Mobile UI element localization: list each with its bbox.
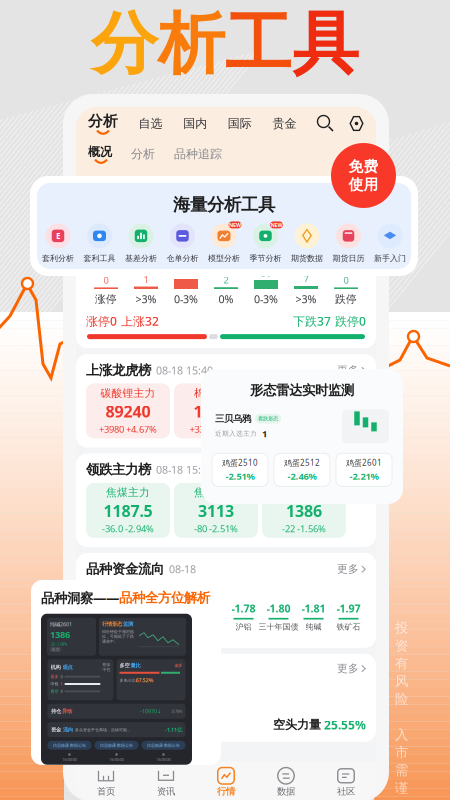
staticText: 焦煤主力 <box>106 486 150 499</box>
staticText: 品种追踪 <box>174 147 222 161</box>
staticText: 多单占比 <box>119 678 135 683</box>
staticText: 海量分析工具 <box>173 194 275 215</box>
staticText: 偏多 <box>174 663 182 668</box>
staticText: 仓单分析 <box>166 253 198 263</box>
staticText: 国内 <box>183 116 207 131</box>
button[interactable]: 首页 <box>76 762 136 800</box>
staticText: 使用 <box>348 175 378 193</box>
staticText: 近期入选主力 <box>215 429 257 438</box>
staticText: 空头力量 <box>273 717 321 732</box>
button[interactable]: 概况 <box>88 141 112 166</box>
staticText: 3113 <box>198 500 234 521</box>
staticText: 资讯 <box>157 786 175 797</box>
staticText: -1.80 <box>266 601 290 615</box>
button[interactable]: 贵金 <box>272 107 296 139</box>
staticText: 16:00:00 <box>156 757 170 762</box>
button[interactable]: 品种追踪 <box>174 141 222 166</box>
staticText: 纯碱 <box>305 622 321 632</box>
staticText: NEW <box>270 221 282 228</box>
staticText: 主力 <box>51 647 59 652</box>
staticText: 监测 <box>123 621 133 627</box>
staticText: 工 <box>225 3 292 85</box>
button[interactable]: 碳酸锂主力 <box>86 383 170 438</box>
button[interactable]: 设置 <box>348 115 365 132</box>
button[interactable]: E <box>37 221 79 265</box>
button[interactable]: 焦炭主力 <box>174 483 258 538</box>
staticText: >3% <box>135 292 156 306</box>
staticText: 贵金 <box>272 116 296 131</box>
staticText: 品种全方位解析 <box>119 590 210 606</box>
staticText: 机构 <box>50 664 60 670</box>
button[interactable]: 国内 <box>183 107 207 139</box>
staticText: 0-3% <box>254 292 278 306</box>
staticText: 资金 <box>51 726 61 733</box>
staticText: 整体 中性 <box>102 662 110 672</box>
staticText: 08-18 15:40 <box>156 363 213 377</box>
staticText: 0 <box>60 689 62 694</box>
staticText: 60分钟处于相对低位，可能处于下跌通道中。 <box>102 629 134 644</box>
staticText: 0 <box>343 274 348 286</box>
staticText: 品种资金流向 <box>86 561 164 577</box>
staticText: -2.51% <box>225 470 254 482</box>
staticText: 1 <box>262 427 267 440</box>
button[interactable]: 套利工具 <box>79 221 120 265</box>
button[interactable]: 数据 <box>256 762 316 800</box>
staticText: 信息披露·数据公告 <box>100 742 133 748</box>
staticText: 套利分析 <box>42 253 74 263</box>
button[interactable]: 新手入门 <box>369 221 411 265</box>
staticText: 行情 <box>217 786 235 797</box>
staticText: 有 <box>395 655 408 672</box>
staticText: 更多 <box>337 662 359 675</box>
button[interactable]: 更多 <box>337 562 366 576</box>
staticText: 多空 <box>119 662 129 669</box>
staticText: 1386 <box>286 500 322 521</box>
staticText: 资 <box>395 637 408 654</box>
button[interactable]: 基差分析 <box>120 221 162 265</box>
button[interactable]: 期货日历 <box>328 221 369 265</box>
button[interactable]: 分析 <box>131 141 155 166</box>
staticText: 异动 <box>62 708 72 714</box>
staticText: 市 <box>395 744 408 761</box>
staticText: 31 <box>181 266 191 278</box>
staticText: -80 -2.51% <box>194 522 238 535</box>
button[interactable]: NEW <box>245 221 286 265</box>
staticText: 季节分析 <box>249 253 281 263</box>
staticText: 1 <box>143 273 148 285</box>
button[interactable]: 更多 <box>337 662 366 675</box>
button[interactable]: 搜索 <box>317 115 334 132</box>
staticText: 焦炭主力 <box>194 486 238 499</box>
button[interactable]: 棉花主力 <box>174 383 258 438</box>
button[interactable]: 焦煤主力 <box>86 483 170 538</box>
staticText: 16:00:00 <box>62 757 76 762</box>
staticText: 多头资金平仓离场，后续可能… <box>75 727 130 732</box>
button[interactable]: NEW <box>203 221 245 265</box>
button[interactable]: 国际 <box>228 107 252 139</box>
staticText: 跌停0 <box>335 313 366 329</box>
button[interactable]: 自选 <box>139 107 163 139</box>
staticText: 2 <box>223 274 228 286</box>
staticText: -1.81 <box>301 601 325 615</box>
button[interactable]: 更多 <box>337 364 366 377</box>
staticText: 0-3% <box>174 292 198 306</box>
staticText: 89240 <box>105 401 150 422</box>
staticText: 鸡蛋2510 <box>222 457 258 468</box>
button[interactable]: 资讯 <box>136 762 196 800</box>
staticText: -1.11亿 <box>165 726 182 733</box>
button[interactable]: 行情 <box>196 762 256 800</box>
button[interactable]: 分析 <box>88 107 118 139</box>
staticText: -1.63 <box>161 601 185 615</box>
button[interactable]: 社区 <box>316 762 376 800</box>
staticText: -10970↓ <box>140 708 161 715</box>
button[interactable]: 仓单分析 <box>162 221 203 265</box>
button[interactable]: 玻璃主力 <box>262 383 346 438</box>
staticText: -22 -1.56% <box>282 522 326 535</box>
staticText: 首页 <box>97 786 115 797</box>
button[interactable]: 更多 <box>337 463 366 476</box>
staticText: 玻璃主力 <box>282 387 326 400</box>
button[interactable]: 免费 <box>331 143 396 208</box>
staticText: 社区 <box>337 786 355 797</box>
button[interactable]: 纯碱主力 <box>262 483 346 538</box>
button[interactable]: 期货数据 <box>286 221 328 265</box>
staticText: 期货数据 <box>291 253 323 263</box>
